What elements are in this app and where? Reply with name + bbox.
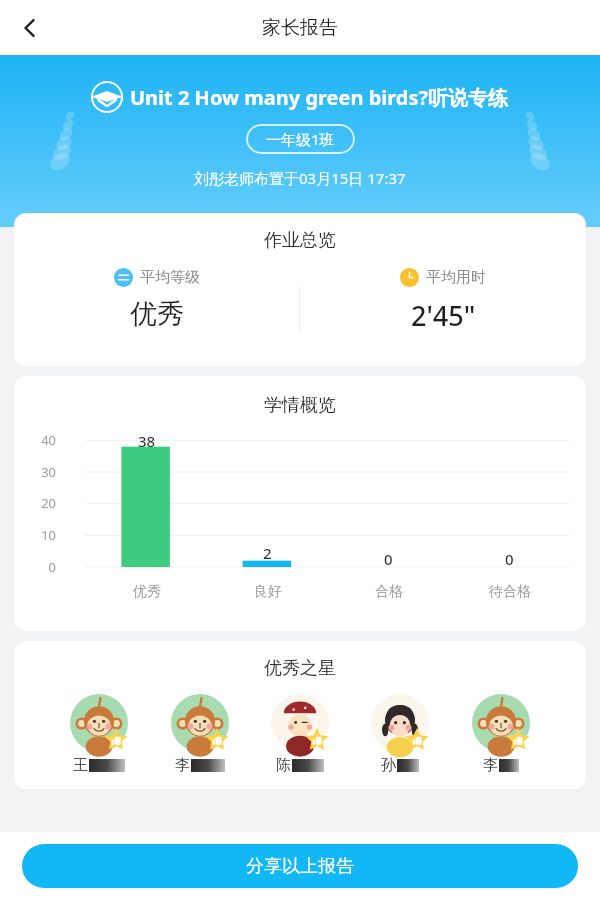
- staticText: 0: [22, 558, 56, 576]
- staticText: 家长报告: [262, 16, 338, 40]
- staticText: 良好: [254, 583, 282, 601]
- button[interactable]: 王: [70, 694, 128, 775]
- staticText: 待合格: [489, 583, 531, 601]
- staticText: 作业总览: [264, 229, 336, 252]
- button[interactable]: 学情概览: [14, 376, 586, 631]
- staticText: 20: [22, 494, 56, 512]
- button[interactable]: 李: [472, 694, 530, 775]
- staticText: 陈: [276, 756, 291, 775]
- staticText: 平均用时: [426, 268, 486, 287]
- button[interactable]: 陈: [271, 694, 329, 775]
- button[interactable]: 优秀之星: [14, 641, 586, 789]
- staticText: 优秀之星: [264, 657, 336, 680]
- button[interactable]: 分享以上报告: [22, 844, 578, 888]
- staticText: 2: [263, 543, 272, 563]
- staticText: 38: [138, 431, 156, 451]
- staticText: 40: [22, 431, 56, 449]
- staticText: 学情概览: [264, 394, 336, 417]
- staticText: 王: [73, 756, 88, 775]
- staticText: 合格: [375, 583, 403, 601]
- staticText: 0: [505, 549, 514, 569]
- staticText: 优秀: [133, 583, 161, 601]
- staticText: 优秀: [130, 297, 184, 331]
- staticText: 李: [483, 756, 498, 775]
- staticText: 刘彤老师布置于03月15日 17:37: [194, 168, 406, 188]
- staticText: 30: [22, 463, 56, 481]
- staticText: 10: [22, 526, 56, 544]
- button[interactable]: 一年级1班: [246, 124, 355, 154]
- staticText: 孙: [381, 756, 396, 775]
- staticText: 0: [384, 549, 393, 569]
- button[interactable]: 作业总览: [14, 213, 586, 366]
- button[interactable]: 孙: [371, 694, 429, 775]
- button[interactable]: 李: [171, 694, 229, 775]
- staticText: 李: [175, 756, 190, 775]
- staticText: 一年级1班: [266, 129, 335, 149]
- staticText: 分享以上报告: [246, 855, 354, 878]
- staticText: Unit 2 How many green birds?听说专练: [130, 84, 509, 111]
- staticText: 2'45": [411, 297, 476, 334]
- button[interactable]: Back: [8, 6, 52, 50]
- staticText: 平均等级: [140, 268, 200, 287]
